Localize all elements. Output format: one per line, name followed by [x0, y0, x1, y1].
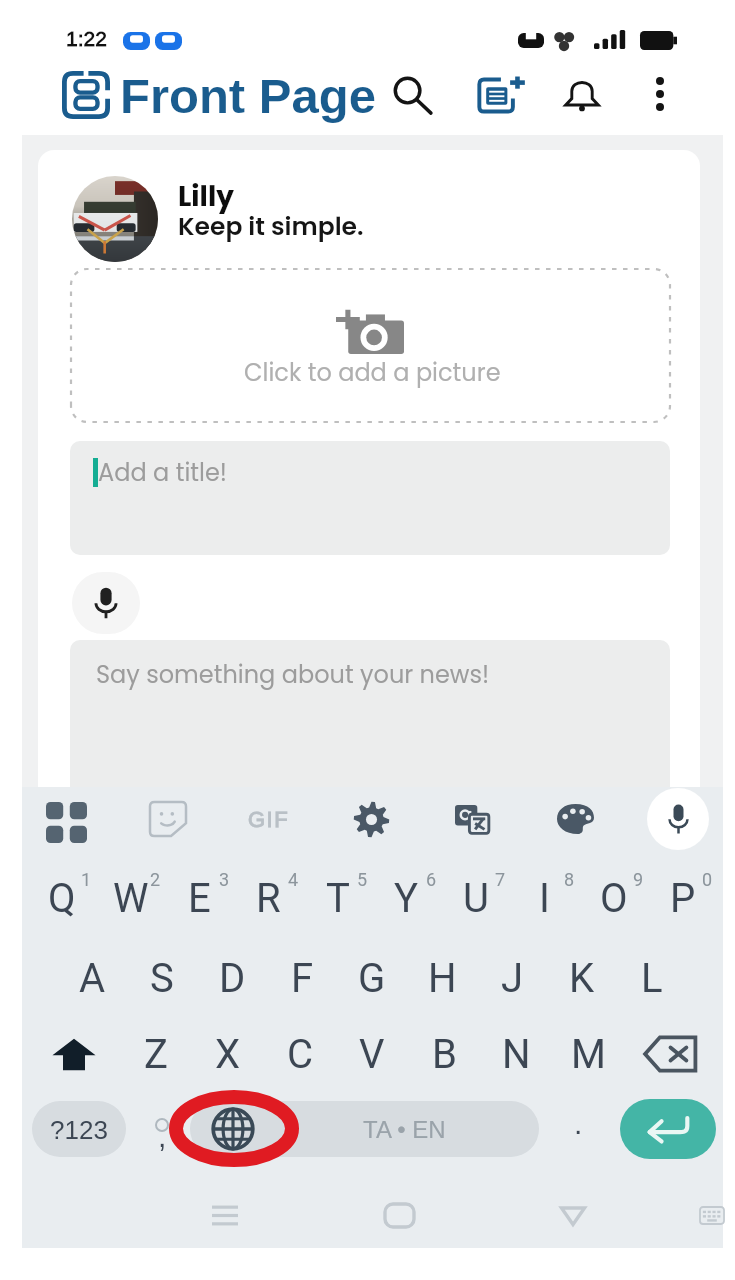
staticText: Add a title!	[98, 456, 227, 490]
staticText: R	[256, 875, 281, 922]
button[interactable]: Z	[120, 1015, 192, 1093]
button[interactable]: W	[96, 857, 165, 939]
button[interactable]: O	[579, 857, 648, 939]
button[interactable]: R	[234, 857, 303, 939]
button[interactable]: Add a title!	[70, 441, 670, 555]
staticText: 2	[150, 869, 161, 890]
button[interactable]: G	[337, 937, 407, 1019]
staticText: V	[359, 1031, 385, 1078]
button[interactable]: M	[552, 1015, 624, 1093]
staticText: M	[571, 1031, 606, 1078]
staticText: A	[79, 955, 106, 1002]
staticText: TA • EN	[363, 1116, 446, 1143]
staticText: K	[569, 955, 595, 1002]
staticText: S	[150, 955, 174, 1002]
button[interactable]: J	[477, 937, 547, 1019]
staticText: N	[502, 1031, 531, 1078]
staticText: F	[291, 955, 314, 1002]
staticText: ,	[158, 1120, 167, 1154]
button[interactable]: Enter	[620, 1099, 716, 1159]
staticText: B	[432, 1031, 457, 1078]
button[interactable]: Shift	[28, 1015, 120, 1093]
button[interactable]: ,	[140, 1101, 184, 1157]
button[interactable]: More options	[633, 67, 687, 121]
button[interactable]: Stickers	[142, 793, 194, 845]
staticText: Lilly	[178, 177, 234, 216]
button[interactable]: ?123	[32, 1101, 126, 1157]
button[interactable]: K	[547, 937, 617, 1019]
staticText: 6	[426, 869, 437, 890]
button[interactable]: Hide keyboard	[690, 1193, 734, 1237]
staticText: L	[641, 955, 663, 1002]
staticText: E	[188, 875, 211, 922]
button[interactable]: Backspace	[624, 1015, 717, 1093]
staticText: ?123	[50, 1115, 108, 1144]
button[interactable]: C	[264, 1015, 336, 1093]
button[interactable]: D	[197, 937, 267, 1019]
staticText: .	[574, 1107, 583, 1141]
button[interactable]: Voice input	[72, 572, 140, 634]
staticText: 3	[219, 869, 230, 890]
button[interactable]: H	[407, 937, 477, 1019]
staticText: O	[600, 875, 628, 922]
staticText: GIF	[248, 807, 290, 832]
staticText: X	[215, 1031, 241, 1078]
button[interactable]: Space	[190, 1101, 539, 1157]
staticText: Q	[48, 875, 76, 922]
button[interactable]: P	[648, 857, 717, 939]
button[interactable]: Recents	[203, 1193, 247, 1237]
button[interactable]: Notifications	[555, 67, 609, 121]
staticText: Click to add a picture	[244, 356, 501, 390]
staticText: J	[501, 955, 524, 1002]
button[interactable]: Change language	[205, 1101, 261, 1157]
button[interactable]: A	[58, 937, 127, 1019]
staticText: 5	[357, 869, 368, 890]
button[interactable]: Home	[377, 1193, 421, 1237]
staticText: H	[428, 955, 457, 1002]
staticText: Y	[394, 875, 419, 922]
button[interactable]: Q	[28, 857, 96, 939]
staticText: 7	[495, 869, 506, 890]
button[interactable]: Settings	[345, 793, 397, 845]
button[interactable]: Voice typing	[647, 788, 709, 850]
staticText: 1:22	[66, 27, 107, 50]
button[interactable]: Translate	[447, 793, 499, 845]
button[interactable]: L	[617, 937, 687, 1019]
button[interactable]: Search	[385, 67, 439, 121]
button[interactable]: V	[336, 1015, 408, 1093]
staticText: 4	[288, 869, 299, 890]
button[interactable]: GIF	[239, 801, 299, 837]
button[interactable]: I	[510, 857, 579, 939]
staticText: Front Page	[120, 69, 376, 124]
button[interactable]: Say something about your news!	[70, 640, 670, 787]
staticText: 0	[702, 869, 713, 890]
button[interactable]: New post	[473, 67, 527, 121]
button[interactable]: Theme	[549, 793, 601, 845]
button[interactable]: N	[480, 1015, 552, 1093]
staticText: W	[113, 875, 149, 922]
staticText: P	[670, 875, 696, 922]
staticText: D	[219, 955, 246, 1002]
button[interactable]: S	[127, 937, 197, 1019]
staticText: G	[358, 955, 386, 1002]
staticText: 1	[81, 869, 92, 890]
staticText: 8	[564, 869, 575, 890]
staticText: U	[463, 875, 489, 922]
button[interactable]: Back	[551, 1193, 595, 1237]
button[interactable]: T	[303, 857, 372, 939]
button[interactable]: F	[267, 937, 337, 1019]
button[interactable]: X	[192, 1015, 264, 1093]
staticText: C	[287, 1031, 314, 1078]
button[interactable]: Add a picture	[70, 268, 671, 423]
staticText: Z	[144, 1031, 168, 1078]
button[interactable]: E	[165, 857, 234, 939]
staticText: 9	[633, 869, 644, 890]
staticText: I	[539, 875, 550, 922]
button[interactable]: B	[408, 1015, 480, 1093]
button[interactable]: .	[556, 1101, 600, 1157]
button[interactable]: Keyboard menu	[40, 793, 92, 845]
staticText: T	[326, 875, 350, 922]
button[interactable]: Y	[372, 857, 441, 939]
button[interactable]: U	[441, 857, 510, 939]
staticText: Keep it simple.	[178, 209, 364, 244]
